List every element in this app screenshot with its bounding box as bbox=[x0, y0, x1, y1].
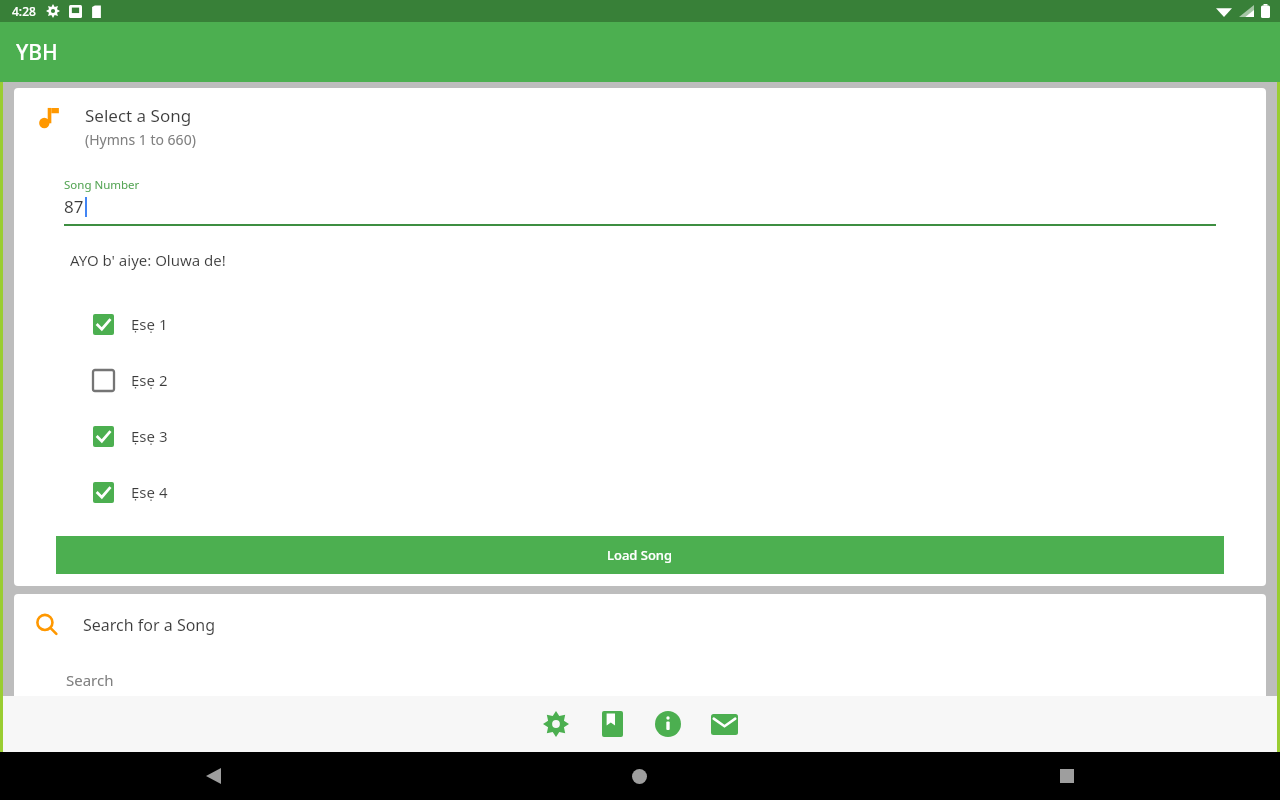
staticText: Ẹsẹ 2 bbox=[131, 370, 168, 390]
staticText: Search bbox=[66, 670, 114, 690]
staticText: Load Song bbox=[607, 546, 673, 564]
button[interactable]: Contact bbox=[696, 696, 752, 752]
staticText: 87 bbox=[64, 195, 84, 218]
button[interactable]: Home bbox=[426, 752, 853, 800]
staticText: Select a Song bbox=[85, 104, 192, 127]
staticText: (Hymns 1 to 660) bbox=[85, 130, 196, 149]
button[interactable]: Bookmarks bbox=[584, 696, 640, 752]
staticText: Song Number bbox=[64, 177, 140, 193]
button[interactable]: Recent apps bbox=[853, 752, 1280, 800]
button[interactable]: Ẹsẹ 4 bbox=[14, 464, 1266, 520]
staticText: AYO b' aiye: Oluwa de! bbox=[70, 250, 226, 270]
button[interactable]: Ẹsẹ 3 bbox=[14, 408, 1266, 464]
staticText: Ẹsẹ 3 bbox=[131, 426, 168, 446]
button[interactable]: Ẹsẹ 2 bbox=[14, 352, 1266, 408]
button[interactable]: Load Song bbox=[56, 536, 1224, 574]
button[interactable]: Settings bbox=[528, 696, 584, 752]
button[interactable]: Ẹsẹ 1 bbox=[14, 296, 1266, 352]
staticText: Ẹsẹ 4 bbox=[131, 482, 168, 502]
staticText: Ẹsẹ 1 bbox=[131, 314, 168, 334]
staticText: 4:28 bbox=[12, 3, 36, 19]
staticText: Search for a Song bbox=[83, 614, 216, 636]
button[interactable]: Information bbox=[640, 696, 696, 752]
button[interactable]: Back bbox=[0, 752, 426, 800]
staticText: YBH bbox=[16, 38, 58, 67]
